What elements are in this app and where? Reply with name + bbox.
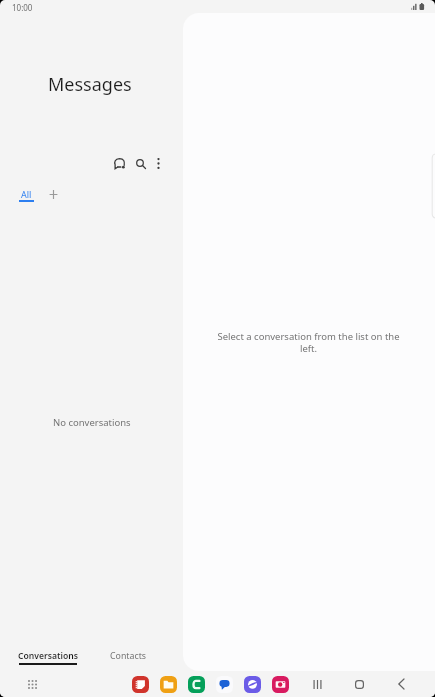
button[interactable]: Conversations <box>14 648 82 667</box>
button[interactable]: All <box>14 185 39 205</box>
button[interactable]: More options <box>150 152 167 175</box>
button[interactable]: Camera <box>272 676 289 693</box>
button[interactable]: Messages <box>216 676 233 693</box>
staticText: Contacts <box>110 650 147 662</box>
button[interactable]: Internet <box>244 676 261 693</box>
button[interactable]: My Files <box>160 676 177 693</box>
button[interactable]: Home <box>349 674 369 694</box>
button[interactable]: Apps <box>22 674 42 694</box>
staticText: Conversations <box>18 650 78 662</box>
button[interactable]: Search <box>131 152 150 175</box>
staticText: Select a conversation from the list on t… <box>216 330 401 355</box>
staticText: 10:00 <box>12 2 33 13</box>
button[interactable]: Recents <box>307 674 327 694</box>
button[interactable]: Back <box>391 674 411 694</box>
button[interactable]: New conversation <box>107 152 131 175</box>
button[interactable]: Contacts <box>106 648 151 664</box>
button[interactable]: Samsung Notes <box>132 676 149 693</box>
button[interactable]: Phone <box>188 676 205 693</box>
staticText: No conversations <box>53 416 131 429</box>
staticText: All <box>21 188 32 200</box>
staticText: Messages <box>48 72 132 97</box>
button[interactable]: Add <box>44 185 62 203</box>
